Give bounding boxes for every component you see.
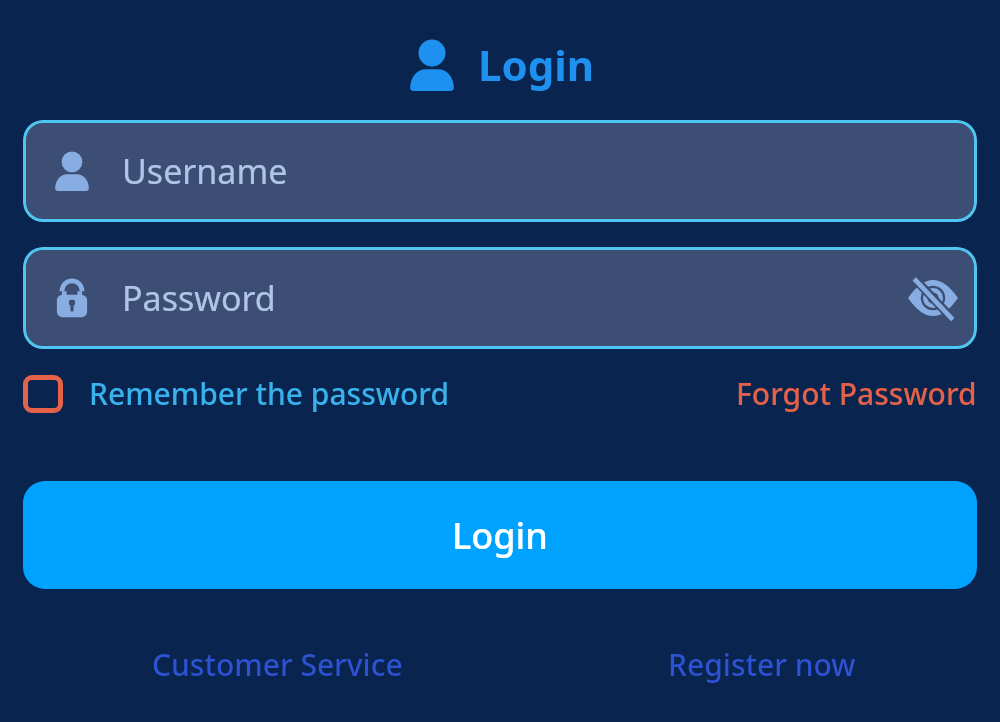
staticText: Username [122,148,288,194]
button[interactable]: Register now [668,644,856,685]
staticText: Password [122,275,276,321]
staticText: Login [452,511,548,560]
staticText: Register now [668,644,856,685]
button[interactable]: Username [23,120,977,222]
button[interactable]: Login [23,481,977,589]
button[interactable] [905,270,961,326]
button[interactable]: Password [23,247,977,349]
button[interactable]: Remember the password [89,373,449,414]
staticText: Customer Service [152,644,403,685]
staticText: Remember the password [89,373,449,414]
button[interactable]: Forgot Password [736,373,977,414]
staticText: Forgot Password [736,373,977,414]
button[interactable] [23,375,63,413]
button[interactable]: Customer Service [152,644,403,685]
staticText: Login [478,36,595,93]
